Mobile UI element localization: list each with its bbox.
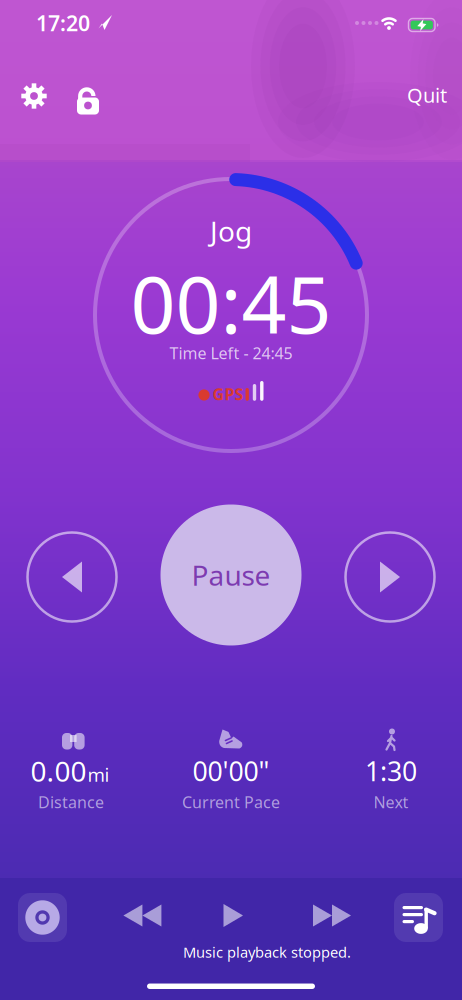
staticText: 1:30	[365, 753, 417, 789]
button[interactable]: Previous track	[123, 904, 161, 926]
button[interactable]: Previous interval	[26, 531, 118, 623]
staticText: 0.00	[30, 752, 86, 790]
staticText: Current Pace	[182, 791, 280, 813]
button[interactable]: Next interval	[344, 531, 436, 623]
button[interactable]: Lock	[71, 78, 105, 112]
staticText: Music playback stopped.	[183, 942, 351, 962]
staticText: 00'00"	[192, 753, 269, 789]
button[interactable]: Play	[223, 904, 243, 927]
staticText: 00:45	[130, 251, 331, 355]
staticText: Pause	[191, 556, 270, 594]
button[interactable]: Settings	[17, 79, 51, 113]
staticText: 17:20	[36, 9, 90, 37]
button[interactable]: Music playlist	[394, 893, 443, 942]
staticText: mi	[87, 762, 109, 787]
button[interactable]: Quit	[398, 75, 456, 115]
staticText: GPS	[212, 383, 243, 405]
staticText: Distance	[38, 791, 104, 813]
button[interactable]: Pause	[160, 504, 301, 645]
staticText: Quit	[407, 82, 447, 108]
staticText: Jog	[210, 212, 252, 250]
button[interactable]: Now playing	[18, 893, 67, 942]
staticText: Time Left - 24:45	[169, 342, 292, 364]
staticText: Next	[373, 791, 408, 813]
button[interactable]: Next track	[313, 904, 351, 926]
